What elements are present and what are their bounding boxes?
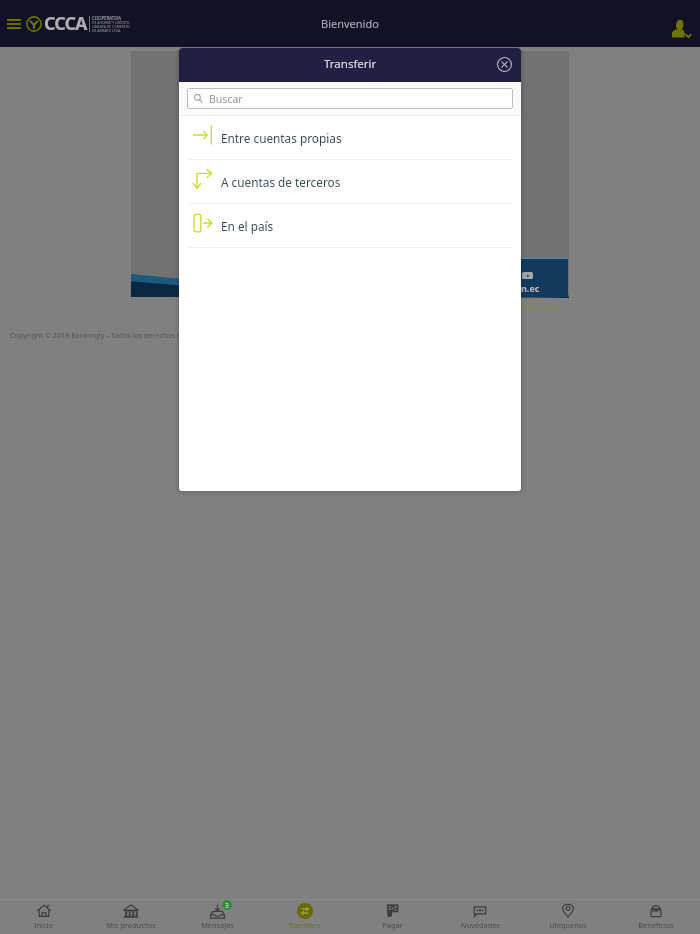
button[interactable]: Inicio: [0, 899, 87, 934]
staticText: En el país: [221, 218, 274, 234]
staticText: Copyright © 2018 Bankingly - Todos los d…: [10, 330, 214, 340]
staticText: Pagar: [382, 920, 403, 930]
staticText: DE AHORRO Y CRÉDITO: [92, 20, 130, 25]
staticText: A cuentas de terceros: [221, 174, 341, 190]
button[interactable]: Novedades: [436, 899, 524, 934]
staticText: Mensajes: [201, 920, 234, 930]
staticText: Entre cuentas propias: [221, 130, 342, 146]
staticText: Buscar: [209, 92, 243, 106]
button[interactable]: En el país: [179, 204, 521, 247]
staticText: Ubíquenos: [549, 920, 587, 930]
staticText: Transferir: [288, 920, 322, 930]
button[interactable]: Transferir: [261, 899, 348, 934]
staticText: CÁMARA DE COMERCIO: [92, 24, 130, 29]
staticText: DE AMBATO LTDA.: [92, 28, 122, 33]
button[interactable]: Ubíquenos: [524, 899, 612, 934]
staticText: Novedades: [461, 920, 500, 930]
button[interactable]: 3: [174, 899, 261, 934]
button[interactable]: A cuentas de terceros: [179, 160, 521, 203]
staticText: COOPERATIVA: [92, 15, 122, 21]
staticText: Transferir: [324, 56, 377, 72]
staticText: Inicio: [34, 920, 53, 930]
button[interactable]: Ver más: [524, 301, 561, 314]
staticText: Beneficios: [638, 920, 674, 930]
button[interactable]: Entre cuentas propias: [179, 116, 521, 159]
button[interactable]: Beneficios: [612, 899, 700, 934]
staticText: CCCA: [44, 11, 87, 36]
staticText: 3: [225, 901, 229, 910]
button[interactable]: Buscar: [187, 88, 513, 109]
staticText: Bienvenido: [321, 16, 379, 31]
staticText: n.ec: [521, 282, 540, 294]
button[interactable]: Menu: [2, 12, 26, 36]
button[interactable]: Perfil: [665, 11, 697, 43]
button[interactable]: Mis productos: [87, 899, 174, 934]
button[interactable]: Pagar: [348, 899, 436, 934]
staticText: Mis productos: [106, 920, 156, 930]
button[interactable]: Cerrar: [493, 53, 515, 75]
